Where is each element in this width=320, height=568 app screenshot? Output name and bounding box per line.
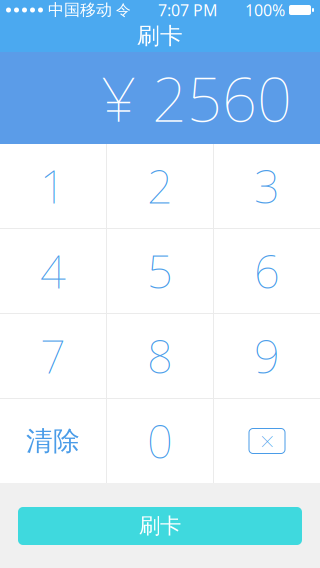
- button[interactable]: Delete: [214, 399, 320, 483]
- staticText: 中国移动: [48, 0, 112, 20]
- button[interactable]: 3: [214, 144, 320, 228]
- staticText: 清除: [26, 425, 80, 457]
- staticText: 1: [40, 156, 66, 216]
- staticText: 6: [254, 241, 280, 301]
- button[interactable]: 0: [107, 399, 213, 483]
- button[interactable]: 1: [0, 144, 106, 228]
- staticText: 9: [254, 326, 280, 386]
- staticText: 5: [147, 241, 173, 301]
- button[interactable]: 6: [214, 229, 320, 313]
- button[interactable]: 9: [214, 314, 320, 398]
- staticText: 刷卡: [137, 22, 183, 50]
- button[interactable]: 2: [107, 144, 213, 228]
- staticText: 7:07 PM: [158, 0, 218, 21]
- staticText: 刷卡: [139, 513, 181, 539]
- staticText: 令: [116, 1, 131, 19]
- button[interactable]: 5: [107, 229, 213, 313]
- staticText: 4: [40, 241, 66, 301]
- staticText: 100%: [245, 0, 285, 21]
- staticText: ×: [260, 424, 274, 458]
- button[interactable]: 清除: [0, 399, 106, 483]
- staticText: 7: [40, 326, 66, 386]
- button[interactable]: 刷卡: [18, 507, 302, 545]
- staticText: ¥ 2560: [101, 57, 292, 139]
- button[interactable]: 4: [0, 229, 106, 313]
- button[interactable]: 7: [0, 314, 106, 398]
- staticText: 3: [254, 156, 280, 216]
- staticText: 8: [147, 326, 173, 386]
- staticText: 2: [147, 156, 173, 216]
- staticText: 0: [147, 411, 173, 471]
- button[interactable]: 8: [107, 314, 213, 398]
